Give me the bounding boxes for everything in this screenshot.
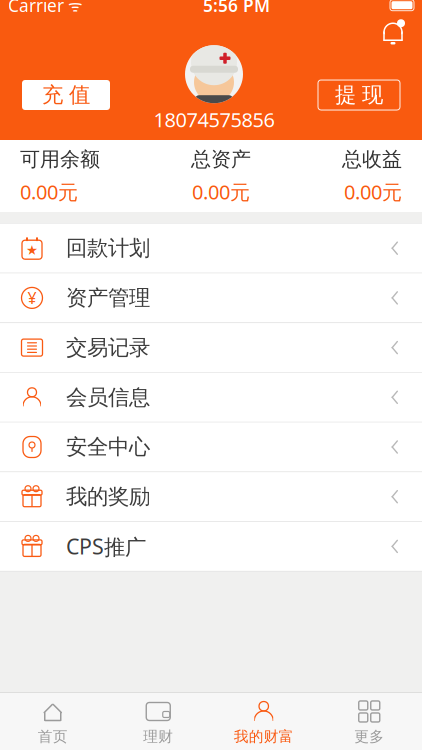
staticText: 0.00元 — [20, 178, 78, 205]
button[interactable]: Notifications — [380, 15, 422, 45]
staticText: 总资产 — [191, 147, 251, 171]
staticText: 资产管理 — [66, 285, 150, 311]
staticText: Carrier — [8, 0, 64, 17]
staticText: 安全中心 — [66, 434, 150, 460]
staticText: CPS推广 — [66, 532, 146, 561]
button[interactable]: 理财 — [105, 692, 211, 750]
button[interactable]: 提 现 — [318, 80, 400, 110]
staticText: 会员信息 — [66, 384, 150, 410]
staticText: 充 值 — [42, 82, 90, 108]
button[interactable]: 更多 — [316, 692, 422, 750]
button[interactable]: 会员信息 — [0, 373, 422, 422]
button[interactable]: 安全中心 — [0, 422, 422, 472]
staticText: 5:56 PM — [203, 0, 270, 17]
staticText: ★ — [26, 243, 38, 258]
button[interactable]: 首页 — [0, 692, 105, 750]
staticText: 交易记录 — [66, 334, 150, 361]
staticText: 0.00元 — [344, 178, 402, 205]
staticText: ᯤ — [64, 0, 83, 16]
staticText: 理财 — [143, 727, 173, 745]
staticText: 首页 — [38, 727, 68, 745]
staticText: 可用余额 — [20, 147, 100, 171]
button[interactable]: ★ — [0, 224, 422, 273]
staticText: 提 现 — [335, 82, 383, 108]
staticText: 更多 — [354, 727, 384, 745]
staticText: 18074575856 — [153, 106, 274, 133]
staticText: 0.00元 — [192, 178, 250, 205]
staticText: 我的财富 — [234, 727, 294, 745]
staticText: 回款计划 — [66, 235, 150, 261]
button[interactable]: ¥ — [0, 273, 422, 323]
button[interactable]: 我的财富 — [211, 692, 316, 750]
button[interactable]: CPS推广 — [0, 522, 422, 572]
button[interactable]: 我的奖励 — [0, 472, 422, 522]
staticText: 我的奖励 — [66, 484, 150, 510]
staticText: ¥ — [27, 287, 36, 308]
staticText: 总收益 — [342, 147, 402, 171]
button[interactable]: 交易记录 — [0, 323, 422, 373]
button[interactable]: 充 值 — [22, 80, 110, 110]
